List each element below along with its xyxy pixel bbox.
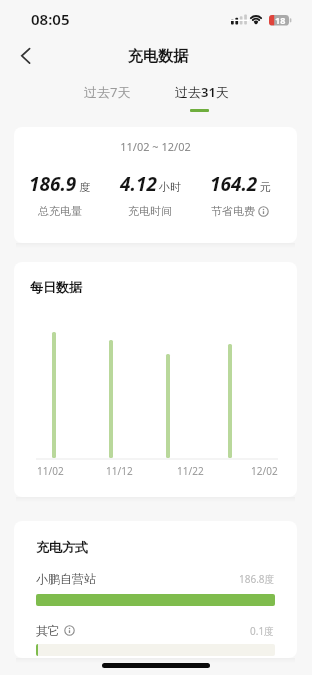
staticText: 小鹏自营站 — [36, 571, 96, 586]
staticText: 11/12 — [106, 464, 133, 478]
staticText: 11/02 — [37, 464, 64, 478]
staticText: 186.8度 — [239, 572, 275, 586]
button[interactable]: 过去31天 — [175, 83, 229, 112]
staticText: 总充电量 — [38, 204, 82, 218]
staticText: 4.12 — [120, 171, 157, 197]
staticText: 11/22 — [177, 464, 204, 478]
staticText: 充电时间 — [128, 204, 172, 218]
button[interactable] — [12, 42, 40, 70]
staticText: 节省电费 — [211, 204, 255, 218]
staticText: 08:05 — [31, 9, 70, 29]
button[interactable]: 其它 — [36, 623, 75, 638]
staticText: 12/02 — [251, 464, 278, 478]
staticText: 164.2 — [210, 171, 258, 197]
staticText: 小时 — [159, 180, 181, 194]
staticText: 0.1度 — [250, 624, 275, 638]
staticText: 元 — [260, 180, 271, 194]
staticText: 充电方式 — [36, 539, 88, 555]
staticText: 过去31天 — [175, 83, 229, 101]
staticText: 度 — [79, 180, 90, 194]
staticText: 11/02 ~ 12/02 — [14, 139, 297, 154]
staticText: 186.9 — [29, 171, 77, 197]
button[interactable]: 过去7天 — [84, 83, 131, 112]
button[interactable]: 节省电费 — [211, 204, 269, 218]
staticText: 其它 — [36, 623, 60, 638]
staticText: 18 — [275, 14, 286, 26]
staticText: 充电数据 — [128, 47, 188, 66]
staticText: 过去7天 — [84, 83, 131, 101]
staticText: 每日数据 — [30, 279, 82, 295]
